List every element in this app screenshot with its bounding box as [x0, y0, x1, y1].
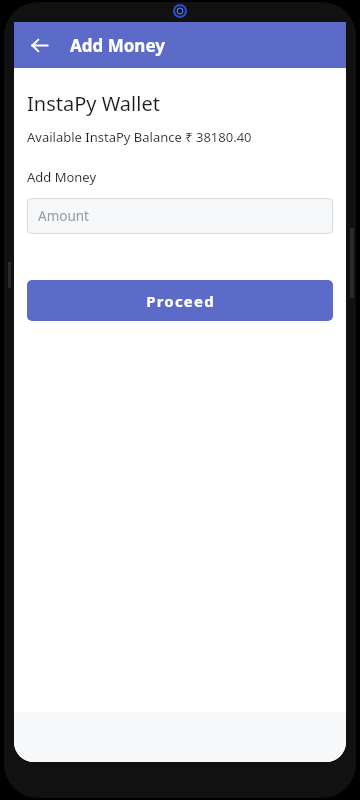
staticText: Add Money — [27, 168, 97, 186]
staticText: Add Money — [70, 34, 165, 57]
button[interactable]: Back — [20, 26, 58, 64]
staticText: InstaPy Wallet — [27, 90, 160, 117]
button[interactable]: Proceed — [27, 280, 333, 321]
staticText: Amount — [38, 207, 89, 225]
button[interactable]: Amount — [27, 198, 333, 234]
staticText: Proceed — [146, 291, 215, 311]
staticText: Available InstaPy Balance ₹ 38180.40 — [27, 128, 252, 146]
